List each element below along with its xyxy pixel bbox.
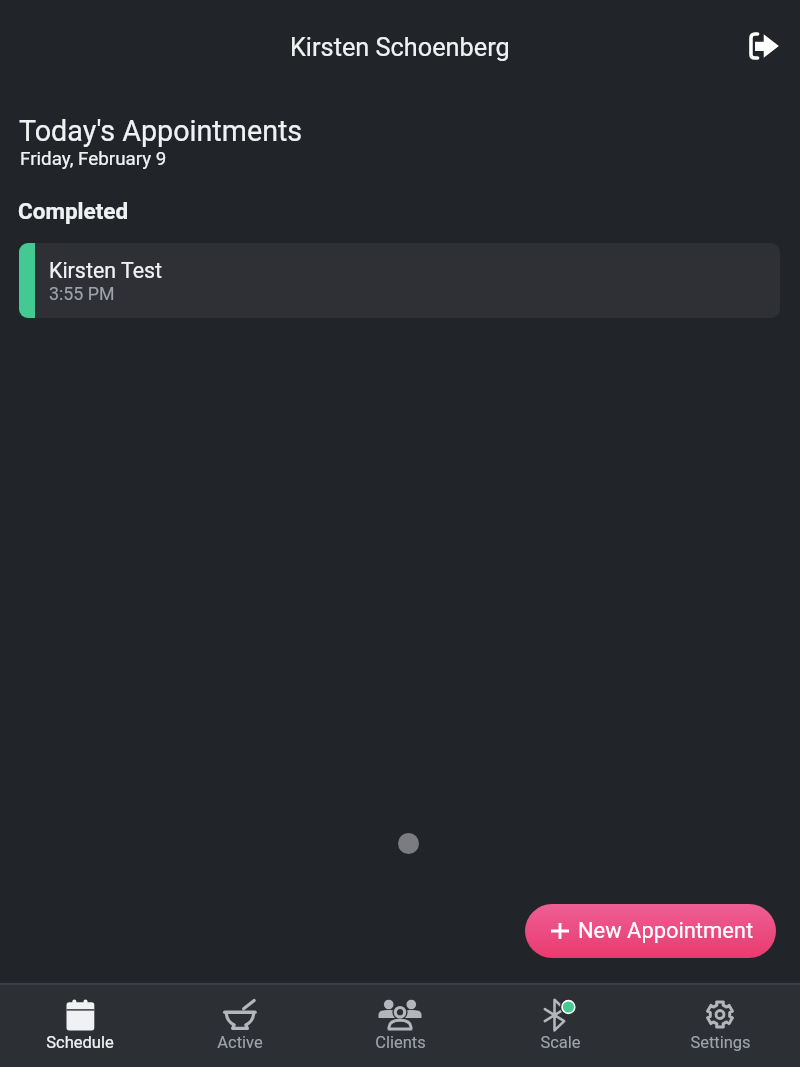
staticText: Kirsten Test bbox=[49, 258, 163, 283]
button[interactable]: Log out bbox=[737, 22, 785, 70]
button[interactable]: New Appointment bbox=[525, 904, 776, 958]
staticText: Today's Appointments bbox=[19, 114, 303, 148]
button[interactable]: Schedule bbox=[0, 983, 160, 1067]
staticText: Settings bbox=[690, 1033, 751, 1052]
staticText: 3:55 PM bbox=[49, 283, 115, 304]
staticText: Kirsten Schoenberg bbox=[290, 33, 510, 63]
button[interactable]: Clients bbox=[320, 983, 480, 1067]
staticText: Completed bbox=[18, 198, 129, 224]
staticText: Schedule bbox=[46, 1033, 114, 1052]
button[interactable]: Scale bbox=[480, 983, 640, 1067]
button[interactable]: Settings bbox=[640, 983, 800, 1067]
button[interactable]: Active bbox=[160, 983, 320, 1067]
staticText: Scale bbox=[540, 1033, 581, 1052]
staticText: Active bbox=[217, 1033, 263, 1052]
staticText: Friday, February 9 bbox=[20, 148, 167, 170]
button[interactable]: Kirsten Test bbox=[19, 243, 780, 318]
staticText: New Appointment bbox=[578, 918, 754, 944]
staticText: Clients bbox=[375, 1033, 426, 1052]
